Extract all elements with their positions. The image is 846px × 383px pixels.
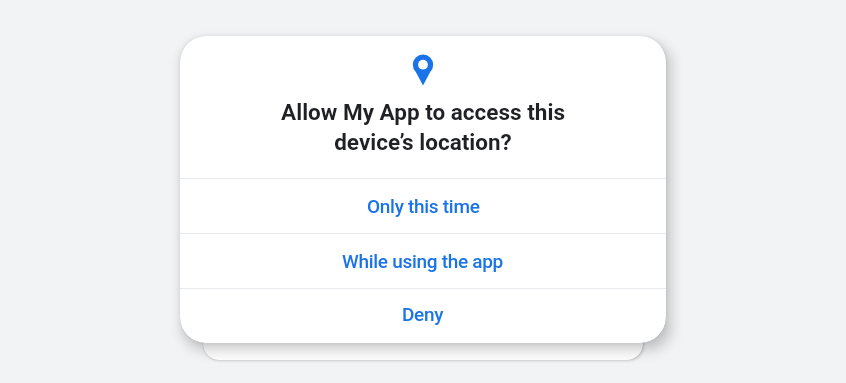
staticText: While using the app (342, 250, 504, 272)
button[interactable]: Only this time (180, 179, 666, 233)
button[interactable]: Deny (180, 289, 666, 343)
staticText: Allow My App to access this device’s loc… (281, 99, 565, 155)
staticText: Deny (402, 303, 444, 325)
staticText: Only this time (367, 195, 480, 217)
button[interactable]: While using the app (180, 234, 666, 288)
